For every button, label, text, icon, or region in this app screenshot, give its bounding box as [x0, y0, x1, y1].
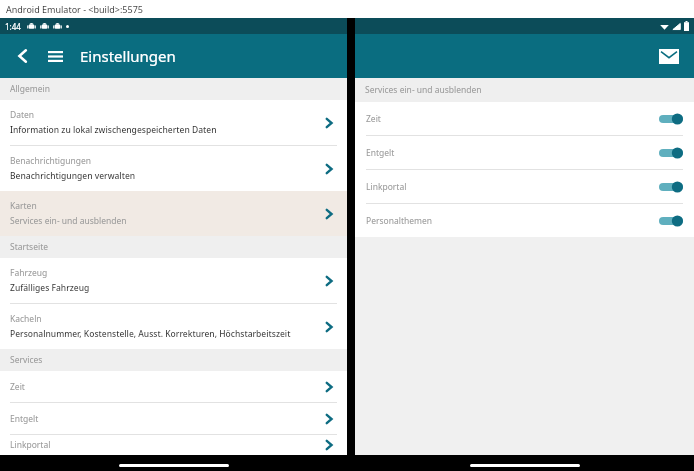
- staticText: Entgelt: [10, 413, 321, 425]
- button[interactable]: Zeit: [355, 102, 694, 136]
- staticText: Information zu lokal zwischengespeichert…: [10, 124, 217, 136]
- staticText: Kacheln: [10, 313, 42, 325]
- button[interactable]: Entgelt: [355, 136, 694, 170]
- staticText: Linkportal: [10, 439, 321, 451]
- button[interactable]: Benachrichtigungen: [0, 146, 347, 191]
- button[interactable]: Entgelt: [0, 403, 347, 435]
- button[interactable]: Personalthemen: [355, 204, 694, 237]
- staticText: Einstellungen: [80, 46, 176, 66]
- button[interactable]: Karten: [0, 191, 347, 236]
- staticText: Entgelt: [366, 147, 659, 159]
- staticText: Benachrichtigungen: [10, 155, 91, 167]
- button[interactable]: Linkportal: [355, 170, 694, 204]
- button[interactable]: Fahrzeug: [0, 258, 347, 304]
- staticText: Linkportal: [366, 181, 659, 193]
- button[interactable]: Linkportal: [0, 435, 347, 455]
- staticText: Services: [10, 354, 43, 366]
- staticText: Services ein- und ausblenden: [10, 215, 127, 227]
- staticText: Zeit: [366, 113, 659, 125]
- staticText: Daten: [10, 109, 35, 121]
- staticText: Fahrzeug: [10, 267, 48, 279]
- button[interactable]: Daten: [0, 100, 347, 146]
- staticText: Karten: [10, 200, 37, 212]
- staticText: Allgemein: [10, 83, 51, 95]
- button[interactable]: Messages: [656, 43, 682, 69]
- button[interactable]: Zeit: [0, 371, 347, 403]
- staticText: Startseite: [10, 241, 49, 253]
- button[interactable]: Kacheln: [0, 304, 347, 349]
- staticText: Services ein- und ausblenden: [365, 84, 482, 96]
- staticText: Personalnummer, Kostenstelle, Ausst. Kor…: [10, 328, 291, 340]
- staticText: Benachrichtigungen verwalten: [10, 170, 136, 182]
- staticText: Personalthemen: [366, 215, 659, 227]
- staticText: 1:44: [5, 21, 21, 32]
- staticText: Android Emulator - <build>:5575: [6, 3, 143, 15]
- staticText: Zufälliges Fahrzeug: [10, 282, 90, 294]
- staticText: Zeit: [10, 381, 321, 393]
- button[interactable]: Menu: [42, 43, 68, 69]
- button[interactable]: Back: [10, 43, 36, 69]
